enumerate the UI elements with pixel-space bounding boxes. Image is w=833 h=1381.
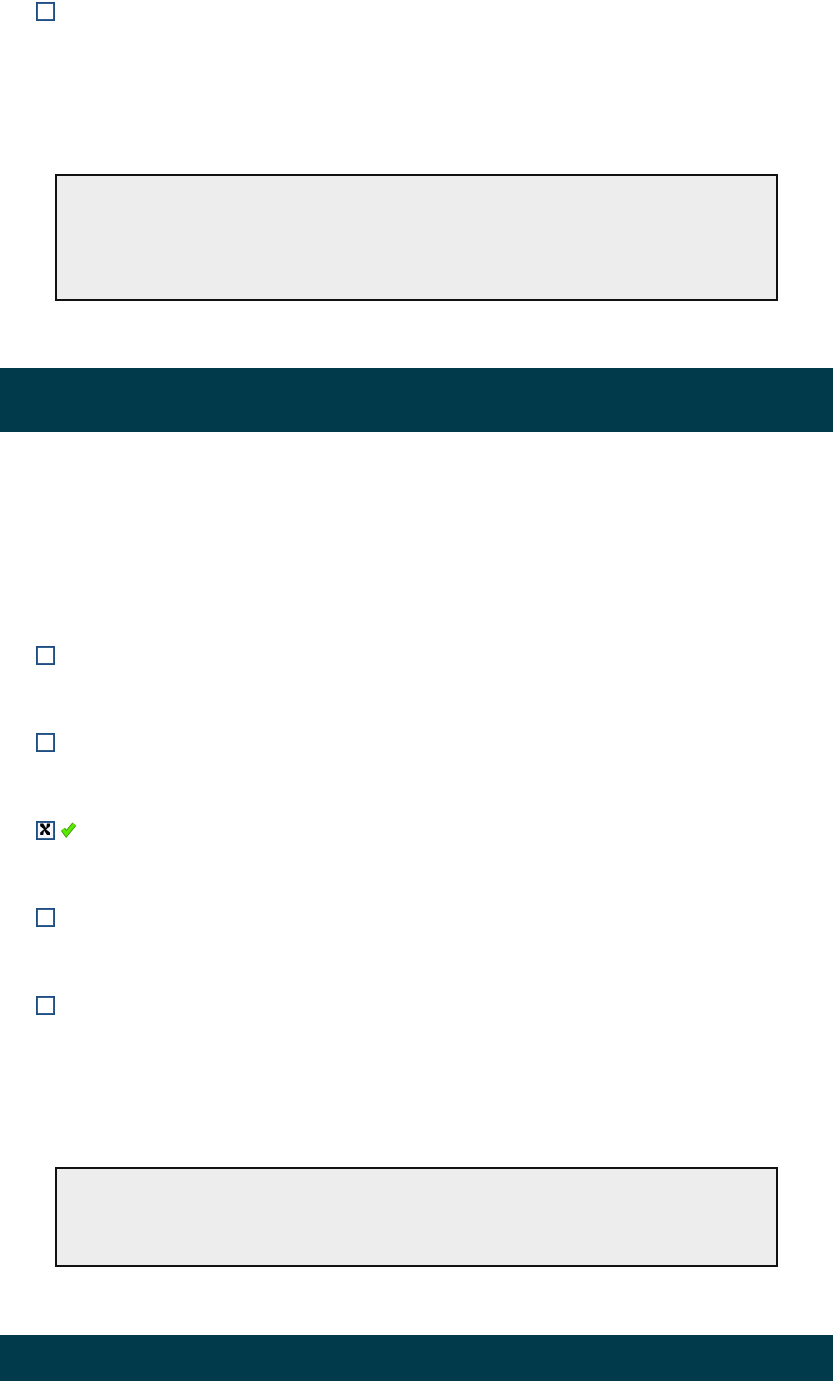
button[interactable]: Summary panel [55, 1167, 778, 1267]
button[interactable]: Image placeholder [36, 821, 55, 840]
other: Approved [61, 822, 77, 837]
button[interactable]: Checkbox [36, 646, 55, 665]
button[interactable]: Checkbox [36, 996, 55, 1015]
button[interactable]: Checkbox [36, 908, 55, 927]
button[interactable]: Checkbox [36, 733, 55, 752]
button[interactable]: Checkbox [36, 2, 55, 21]
button[interactable]: Details panel [55, 174, 778, 301]
